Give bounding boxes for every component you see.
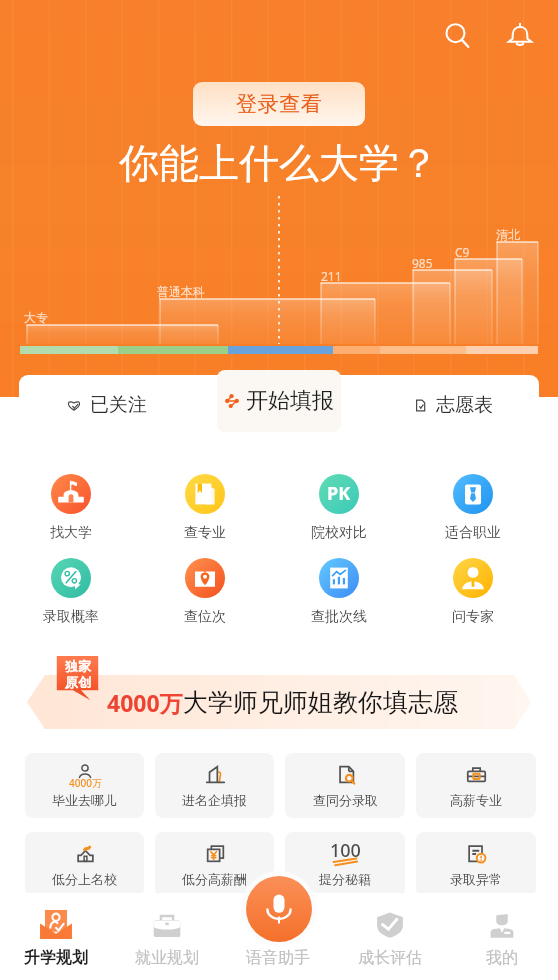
staticText: 高薪专业 bbox=[450, 792, 502, 808]
button[interactable]: 登录查看 bbox=[193, 82, 365, 126]
staticText: 查专业 bbox=[184, 524, 226, 542]
button[interactable]: 高薪专业 bbox=[416, 753, 536, 818]
staticText: 录取异常 bbox=[450, 871, 502, 887]
staticText: 查批次线 bbox=[311, 608, 367, 626]
button[interactable]: 我的 bbox=[446, 893, 558, 980]
staticText: 进名企填报 bbox=[182, 792, 247, 808]
button[interactable]: 成长评估 bbox=[334, 893, 446, 980]
button[interactable]: 查位次 bbox=[138, 558, 272, 626]
staticText: 低分高薪酬 bbox=[182, 871, 247, 887]
button[interactable]: PK bbox=[272, 474, 406, 542]
staticText: 211 bbox=[321, 268, 342, 284]
button[interactable]: 4000万 bbox=[0, 650, 558, 736]
staticText: 录取概率 bbox=[43, 608, 99, 626]
button[interactable]: Search bbox=[434, 12, 480, 58]
staticText: PK bbox=[327, 481, 351, 506]
staticText: 开始填报 bbox=[246, 387, 334, 415]
staticText: 志愿表 bbox=[436, 393, 493, 417]
staticText: 已关注 bbox=[90, 393, 147, 417]
staticText: 清北 bbox=[496, 227, 520, 242]
staticText: 问专家 bbox=[452, 608, 494, 626]
button[interactable]: 低分高薪酬 bbox=[155, 832, 274, 897]
button[interactable]: 低分上名校 bbox=[25, 832, 144, 897]
button[interactable]: 进名企填报 bbox=[155, 753, 274, 818]
staticText: 登录查看 bbox=[236, 91, 323, 117]
staticText: 低分上名校 bbox=[52, 871, 117, 887]
staticText: 985 bbox=[412, 255, 433, 271]
button[interactable]: 适合职业 bbox=[406, 474, 540, 542]
staticText: 院校对比 bbox=[311, 524, 367, 542]
staticText: C9 bbox=[455, 244, 470, 260]
button[interactable]: 开始填报 bbox=[217, 370, 341, 432]
staticText: 查同分录取 bbox=[313, 792, 378, 808]
staticText: 普通本科 bbox=[157, 284, 205, 299]
button[interactable]: 录取概率 bbox=[4, 558, 138, 626]
staticText: 4000万 bbox=[107, 687, 183, 718]
staticText: 独家 bbox=[65, 658, 91, 674]
staticText: 就业规划 bbox=[135, 948, 199, 968]
button[interactable]: 就业规划 bbox=[111, 893, 222, 980]
button[interactable]: 查同分录取 bbox=[285, 753, 405, 818]
button[interactable]: 查专业 bbox=[138, 474, 272, 542]
staticText: 大专 bbox=[24, 310, 48, 325]
staticText: 提分秘籍 bbox=[319, 871, 371, 887]
button[interactable]: 找大学 bbox=[4, 474, 138, 542]
staticText: 我的 bbox=[486, 948, 518, 968]
staticText: 毕业去哪儿 bbox=[52, 792, 117, 808]
staticText: 成长评估 bbox=[358, 948, 422, 968]
button[interactable]: 问专家 bbox=[406, 558, 540, 626]
staticText: 100 bbox=[330, 838, 361, 863]
staticText: 大学师兄师姐教你填志愿 bbox=[183, 687, 458, 718]
staticText: 升学规划 bbox=[24, 948, 88, 968]
button[interactable]: 志愿表 bbox=[366, 375, 539, 435]
staticText: 找大学 bbox=[50, 524, 92, 542]
button[interactable]: 语音助手 bbox=[222, 893, 334, 980]
staticText: 查位次 bbox=[184, 608, 226, 626]
button[interactable]: 已关注 bbox=[19, 375, 193, 435]
staticText: 原创 bbox=[65, 674, 91, 690]
staticText: 语音助手 bbox=[246, 948, 310, 968]
button[interactable]: 4000万 bbox=[25, 753, 144, 818]
button[interactable]: 升学规划 bbox=[0, 893, 111, 980]
button[interactable]: Voice assistant bbox=[246, 876, 312, 942]
button[interactable]: Notifications bbox=[497, 12, 543, 58]
staticText: 你能上什么大学？ bbox=[119, 138, 439, 188]
staticText: 适合职业 bbox=[445, 524, 501, 542]
button[interactable]: 查批次线 bbox=[272, 558, 406, 626]
staticText: 4000万 bbox=[69, 776, 102, 790]
button[interactable]: 100 bbox=[285, 832, 405, 897]
button[interactable]: 录取异常 bbox=[416, 832, 536, 897]
